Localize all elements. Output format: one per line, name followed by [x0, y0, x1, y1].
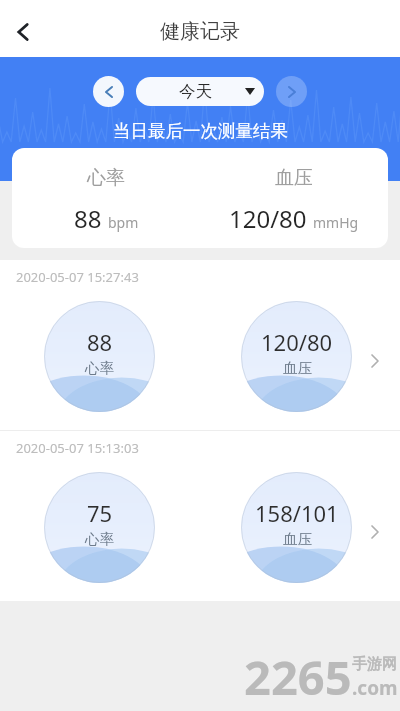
staticText: 2020-05-07 15:27:43: [16, 268, 139, 286]
staticText: 手游网: [352, 655, 397, 674]
staticText: 血压: [275, 166, 313, 190]
staticText: 当日最后一次测量结果: [113, 120, 288, 142]
button[interactable]: 2020-05-07 15:27:43: [0, 260, 400, 430]
staticText: 血压: [283, 530, 312, 548]
staticText: 2020-05-07 15:13:03: [16, 439, 139, 457]
button[interactable]: Previous day: [93, 76, 124, 107]
staticText: 120/80: [261, 327, 333, 357]
button[interactable]: 今天: [136, 77, 264, 106]
staticText: mmHg: [313, 213, 359, 232]
staticText: 2265: [244, 645, 352, 709]
staticText: 健康记录: [160, 19, 240, 44]
staticText: 158/101: [255, 498, 339, 528]
staticText: .com: [352, 675, 398, 701]
staticText: 血压: [283, 359, 312, 377]
staticText: 心率: [87, 166, 125, 190]
staticText: 心率: [85, 359, 114, 377]
staticText: 75: [87, 498, 113, 528]
staticText: 心率: [85, 530, 114, 548]
button[interactable]: Next day: [276, 76, 307, 107]
staticText: bpm: [108, 213, 139, 232]
button[interactable]: Back: [1, 10, 45, 54]
staticText: 88: [74, 202, 102, 235]
button[interactable]: 2020-05-07 15:13:03: [0, 431, 400, 601]
staticText: 88: [87, 327, 113, 357]
staticText: 120/80: [229, 202, 307, 235]
staticText: 今天: [179, 81, 212, 102]
